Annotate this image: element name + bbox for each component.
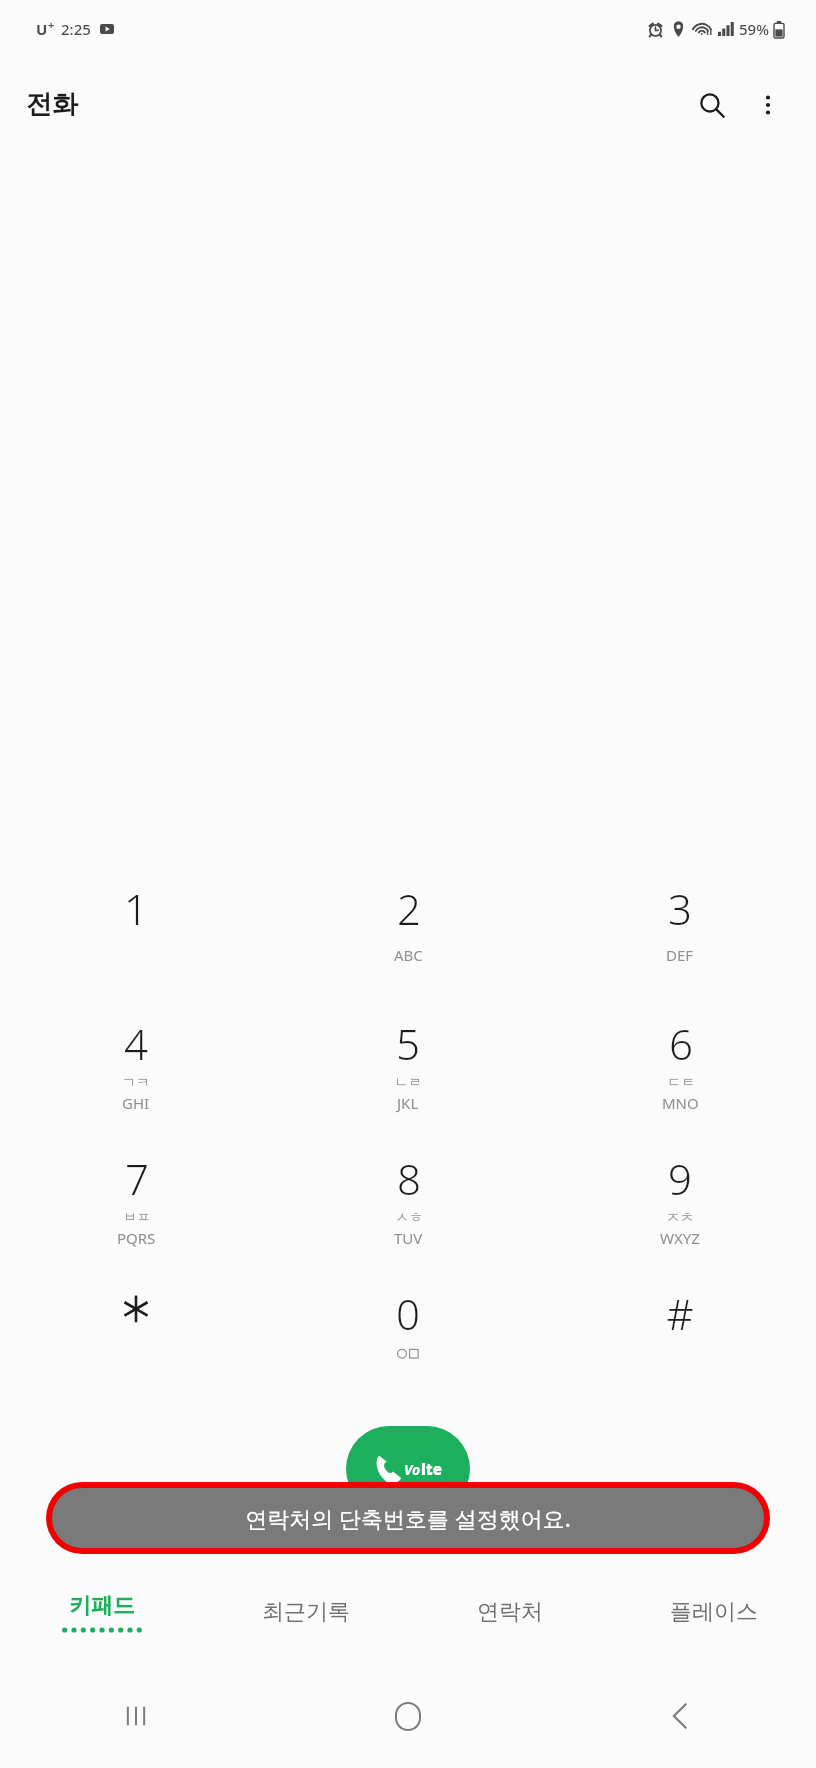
staticText: +: [48, 17, 55, 32]
staticText: 전화: [26, 88, 78, 121]
button[interactable]: Home: [272, 1664, 544, 1768]
staticText: 연락처: [477, 1598, 543, 1626]
staticText: ㅂㅍ: [123, 1209, 151, 1227]
button[interactable]: 3: [544, 866, 816, 1001]
staticText: TUV: [394, 1228, 423, 1248]
button[interactable]: 8: [272, 1136, 544, 1271]
button[interactable]: 9: [544, 1136, 816, 1271]
staticText: 59%: [739, 19, 769, 39]
staticText: MNO: [662, 1093, 699, 1113]
staticText: 연락처의 단축번호를 설정했어요.: [245, 1503, 571, 1533]
button[interactable]: #: [544, 1271, 816, 1406]
staticText: WXYZ: [660, 1228, 700, 1248]
staticText: 5: [396, 1015, 420, 1072]
staticText: ㅅㅎ: [395, 1209, 423, 1227]
staticText: U: [36, 19, 48, 39]
button[interactable]: 5: [272, 1001, 544, 1136]
button[interactable]: Call: [346, 1426, 470, 1512]
staticText: ㅈㅊ: [666, 1209, 694, 1227]
staticText: lte: [421, 1459, 443, 1479]
staticText: 8: [397, 1150, 421, 1207]
button[interactable]: Back: [544, 1664, 816, 1768]
staticText: 7: [125, 1150, 149, 1207]
staticText: 6: [669, 1015, 693, 1072]
button[interactable]: 0: [272, 1271, 544, 1406]
button[interactable]: Recent apps: [0, 1664, 272, 1768]
staticText: ㄴㄹ: [394, 1074, 422, 1092]
button[interactable]: 1: [0, 866, 272, 1001]
staticText: 2:25: [61, 19, 91, 39]
staticText: 4: [124, 1015, 148, 1072]
staticText: Vo: [404, 1460, 421, 1479]
staticText: 최근기록: [262, 1598, 350, 1626]
staticText: 9: [668, 1150, 692, 1207]
staticText: 3: [668, 880, 692, 937]
staticText: PQRS: [117, 1228, 156, 1248]
staticText: ㄱㅋ: [122, 1074, 150, 1092]
button[interactable]: 4: [0, 1001, 272, 1136]
staticText: ABC: [394, 945, 423, 965]
button[interactable]: Search: [684, 77, 740, 133]
button[interactable]: 연락처: [408, 1560, 612, 1664]
staticText: 0: [396, 1285, 420, 1342]
staticText: #: [666, 1285, 694, 1342]
staticText: JKL: [397, 1093, 419, 1113]
staticText: 키패드: [69, 1592, 135, 1620]
button[interactable]: 7: [0, 1136, 272, 1271]
button[interactable]: 키패드: [0, 1560, 204, 1664]
button[interactable]: 최근기록: [204, 1560, 408, 1664]
staticText: GHI: [122, 1093, 150, 1113]
staticText: ㄷㅌ: [667, 1074, 695, 1092]
staticText: 1: [124, 880, 148, 937]
staticText: 2: [397, 880, 421, 937]
staticText: 플레이스: [670, 1598, 758, 1626]
button[interactable]: 2: [272, 866, 544, 1001]
button[interactable]: More options: [740, 77, 796, 133]
staticText: DEF: [666, 945, 694, 965]
button[interactable]: 플레이스: [612, 1560, 816, 1664]
button[interactable]: 6: [544, 1001, 816, 1136]
button[interactable]: [0, 1271, 272, 1406]
